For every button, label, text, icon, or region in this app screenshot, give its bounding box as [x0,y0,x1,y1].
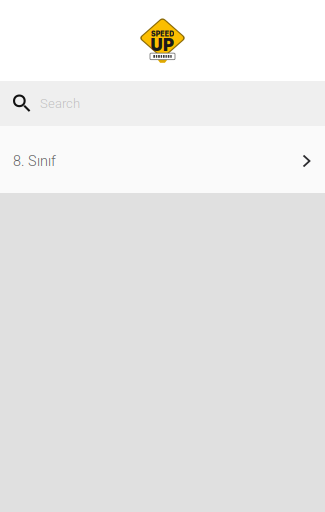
staticText: UP [148,32,177,57]
staticText: 8. Sınıf [13,153,56,169]
button[interactable]: 8. Sınıf [0,126,325,193]
staticText: SPEED [145,27,181,40]
staticText: Search [40,96,80,111]
